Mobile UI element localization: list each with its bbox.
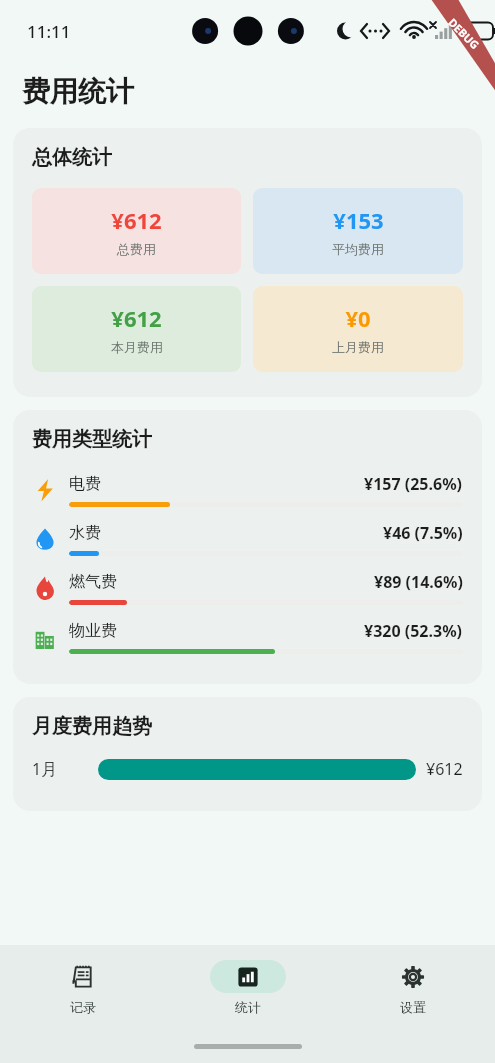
staticText: ¥153 [333,205,384,235]
staticText: 11:11 [27,20,71,43]
button[interactable]: ¥153 [253,188,463,274]
button[interactable]: ¥612 [32,188,241,274]
button[interactable]: 电费 [32,465,463,514]
button[interactable]: 记录 [0,945,165,1029]
staticText: 平均费用 [332,241,384,257]
staticText: 水费 [69,523,101,543]
staticText: 费用类型统计 [32,427,152,452]
staticText: ¥0 [345,303,371,333]
staticText: ¥612 [111,205,162,235]
staticText: 统计 [235,999,261,1015]
staticText: ¥157 (25.6%) [364,473,463,495]
staticText: 上月费用 [332,339,384,355]
staticText: 本月费用 [111,339,163,355]
staticText: 记录 [70,999,96,1015]
staticText: 燃气费 [69,572,117,592]
button[interactable]: 统计 [165,945,330,1029]
staticText: 总体统计 [32,145,112,170]
staticText: 月度费用趋势 [32,714,152,739]
staticText: 费用统计 [22,74,134,109]
staticText: ¥89 (14.6%) [374,571,463,593]
staticText: ¥46 (7.5%) [383,522,463,544]
staticText: 设置 [400,999,426,1015]
button[interactable]: ¥612 [32,286,241,372]
button[interactable]: 1月 [32,754,463,784]
button[interactable]: 燃气费 [32,563,463,612]
staticText: ¥612 [111,303,162,333]
button[interactable]: 设置 [330,945,495,1029]
staticText: 物业费 [69,621,117,641]
staticText: 总费用 [117,241,156,257]
button[interactable]: 水费 [32,514,463,563]
button[interactable]: ¥0 [253,286,463,372]
staticText: 电费 [69,474,101,494]
staticText: ¥612 [426,758,463,780]
button[interactable]: 物业费 [32,612,463,661]
staticText: ¥320 (52.3%) [364,620,463,642]
staticText: 1月 [32,758,98,780]
staticText: DEBUG [445,15,483,52]
